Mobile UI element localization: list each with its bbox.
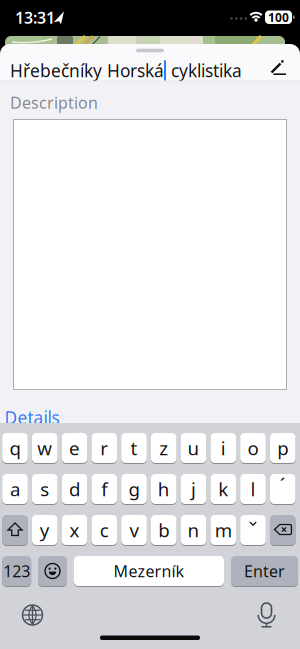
button[interactable]: h bbox=[151, 473, 176, 504]
staticText: b bbox=[158, 518, 169, 542]
button[interactable]: u bbox=[181, 432, 206, 463]
button[interactable] bbox=[270, 514, 295, 545]
staticText: y bbox=[40, 518, 50, 542]
button[interactable]: m bbox=[210, 514, 236, 545]
button[interactable]: Hřebečníky Horská bbox=[0, 44, 256, 81]
button[interactable]: q bbox=[2, 432, 28, 463]
staticText: r bbox=[100, 436, 108, 460]
button[interactable]: Enter bbox=[231, 555, 298, 586]
button[interactable]: t bbox=[121, 432, 147, 463]
button[interactable]: d bbox=[62, 473, 87, 504]
staticText: Details bbox=[4, 406, 59, 429]
staticText: f bbox=[101, 477, 107, 501]
button[interactable]: r bbox=[91, 432, 117, 463]
button[interactable] bbox=[38, 555, 67, 586]
staticText: n bbox=[187, 518, 199, 542]
button[interactable] bbox=[255, 603, 277, 627]
button[interactable]: g bbox=[121, 473, 147, 504]
staticText: z bbox=[159, 436, 168, 460]
button[interactable]: Mezerník bbox=[74, 555, 224, 586]
staticText: j bbox=[191, 477, 196, 501]
button[interactable]: n bbox=[181, 514, 206, 545]
staticText: m bbox=[215, 518, 232, 542]
staticText: h bbox=[158, 477, 170, 501]
staticText: s bbox=[40, 477, 49, 501]
button[interactable]: z bbox=[151, 432, 176, 463]
staticText: t bbox=[130, 436, 137, 460]
button[interactable] bbox=[136, 49, 164, 52]
button[interactable]: x bbox=[62, 514, 87, 545]
staticText: 13:31 bbox=[15, 7, 55, 28]
button[interactable]: a bbox=[2, 473, 28, 504]
staticText: x bbox=[69, 518, 79, 542]
button[interactable]: l bbox=[240, 473, 266, 504]
staticText: c bbox=[100, 518, 109, 542]
button[interactable]: e bbox=[62, 432, 87, 463]
button[interactable] bbox=[21, 604, 43, 626]
staticText: v bbox=[129, 518, 138, 542]
staticText: i bbox=[221, 436, 226, 460]
button[interactable]: w bbox=[32, 432, 57, 463]
staticText: p bbox=[277, 436, 288, 460]
button[interactable]: o bbox=[240, 432, 266, 463]
staticText: 123 bbox=[3, 560, 30, 582]
button[interactable] bbox=[260, 59, 290, 81]
button[interactable] bbox=[2, 514, 28, 545]
button[interactable]: y bbox=[32, 514, 57, 545]
staticText: u bbox=[187, 436, 199, 460]
button[interactable]: f bbox=[91, 473, 117, 504]
button[interactable]: Details bbox=[4, 406, 59, 429]
button[interactable] bbox=[13, 119, 287, 390]
button[interactable]: j bbox=[181, 473, 206, 504]
button[interactable]: p bbox=[270, 432, 295, 463]
staticText: Enter bbox=[244, 560, 285, 582]
staticText: Mezerník bbox=[113, 560, 184, 582]
staticText: ´ bbox=[280, 472, 286, 498]
staticText: Hřebečníky Horská bbox=[10, 59, 164, 82]
staticText: k bbox=[218, 477, 228, 501]
staticText: q bbox=[9, 436, 20, 460]
staticText: 100 bbox=[268, 9, 289, 25]
staticText: w bbox=[37, 436, 52, 460]
staticText: e bbox=[69, 436, 80, 460]
staticText: o bbox=[247, 436, 258, 460]
button[interactable]: b bbox=[151, 514, 176, 545]
staticText: d bbox=[69, 477, 80, 501]
button[interactable]: c bbox=[91, 514, 117, 545]
button[interactable]: s bbox=[32, 473, 57, 504]
button[interactable]: ´ bbox=[270, 473, 295, 504]
staticText: a bbox=[10, 477, 20, 501]
staticText: g bbox=[128, 477, 139, 501]
staticText: l bbox=[250, 477, 255, 501]
staticText: Description bbox=[10, 92, 98, 113]
button[interactable]: k bbox=[210, 473, 236, 504]
button[interactable] bbox=[240, 514, 266, 545]
staticText: cyklistika bbox=[166, 59, 242, 82]
button[interactable]: i bbox=[210, 432, 236, 463]
button[interactable]: v bbox=[121, 514, 147, 545]
button[interactable]: 123 bbox=[2, 555, 31, 586]
